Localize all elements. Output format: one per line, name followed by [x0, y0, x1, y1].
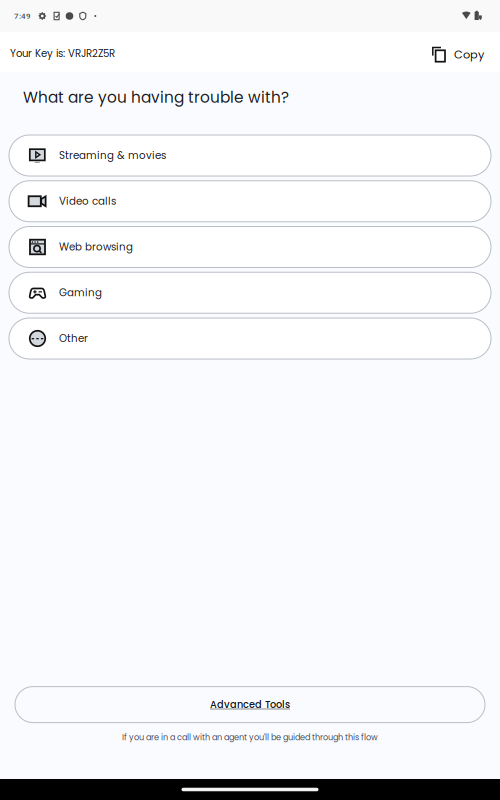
staticText: Your Key is: VRJR2Z5R [10, 46, 115, 61]
button[interactable]: Gaming [9, 272, 491, 313]
staticText: Gaming [59, 286, 102, 300]
button[interactable]: Advanced Tools [15, 687, 485, 723]
button[interactable]: Copy [432, 34, 500, 70]
staticText: Streaming & movies [59, 148, 166, 163]
staticText: 7:49 [14, 11, 31, 21]
staticText: Advanced Tools [210, 698, 290, 711]
staticText: Video calls [59, 194, 116, 208]
button[interactable]: Video calls [9, 181, 491, 222]
button[interactable]: Other [9, 318, 491, 359]
button[interactable]: Streaming & movies [9, 135, 491, 176]
staticText: Copy [454, 47, 484, 62]
staticText: Other [59, 331, 88, 346]
staticText: Web browsing [59, 240, 133, 254]
staticText: If you are in a call with an agent you'l… [122, 732, 378, 743]
button[interactable]: Web browsing [9, 226, 491, 267]
staticText: What are you having trouble with? [23, 87, 289, 108]
